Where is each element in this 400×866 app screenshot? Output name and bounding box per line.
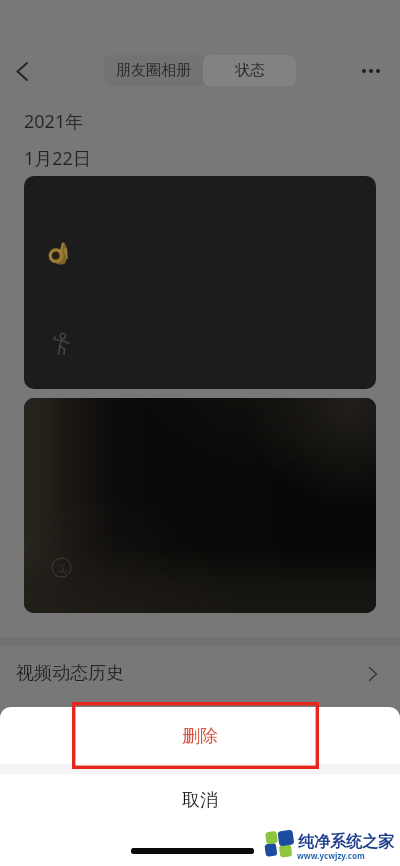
button[interactable]: More options: [351, 51, 391, 91]
button[interactable]: [24, 176, 376, 389]
staticText: 2021年: [24, 109, 84, 134]
button[interactable]: [24, 398, 376, 613]
button[interactable]: 删除: [0, 707, 400, 765]
staticText: 状态: [235, 61, 265, 80]
staticText: 1月22日: [24, 146, 91, 171]
button[interactable]: 视频动态历史: [0, 641, 400, 707]
staticText: 取消: [182, 789, 218, 812]
button[interactable]: 状态: [203, 55, 296, 86]
staticText: 纯净系统之家: [298, 832, 394, 852]
staticText: 删除: [182, 725, 218, 748]
staticText: 视频动态历史: [16, 662, 124, 685]
staticText: www.ycwjzy.com: [297, 850, 365, 861]
button[interactable]: Back: [2, 51, 42, 91]
button[interactable]: 朋友圈相册: [104, 55, 203, 86]
staticText: 朋友圈相册: [116, 61, 191, 80]
button[interactable]: 取消: [0, 771, 400, 829]
